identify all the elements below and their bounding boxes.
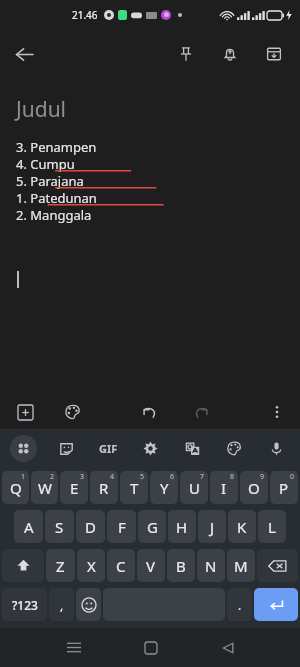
button[interactable]: Period xyxy=(227,588,252,621)
button[interactable]: Settings xyxy=(137,435,164,462)
button[interactable]: Theme xyxy=(221,435,248,462)
staticText: Y xyxy=(160,478,169,498)
staticText: 6 xyxy=(170,472,175,482)
button[interactable]: B xyxy=(167,549,195,582)
staticText: 2 xyxy=(50,472,55,482)
button[interactable]: Z xyxy=(46,549,75,582)
staticText: H xyxy=(176,517,188,537)
staticText: 1. Patedunan xyxy=(16,189,97,206)
staticText: F xyxy=(118,517,126,537)
staticText: A xyxy=(24,517,34,537)
button[interactable]: Judul xyxy=(0,78,300,395)
staticText: 5 xyxy=(140,472,145,482)
staticText: V xyxy=(146,556,156,576)
button[interactable]: E xyxy=(60,471,88,504)
button[interactable]: R xyxy=(90,471,118,504)
button[interactable]: A xyxy=(14,510,43,543)
staticText: 4 xyxy=(110,472,115,482)
staticText: K xyxy=(237,517,247,537)
button[interactable]: H xyxy=(168,510,196,543)
button[interactable]: U xyxy=(180,471,208,504)
staticText: T xyxy=(130,478,139,498)
button[interactable]: I xyxy=(210,471,238,504)
button[interactable]: D xyxy=(76,510,105,543)
button[interactable]: Stickers xyxy=(53,435,80,462)
staticText: U xyxy=(189,478,200,498)
staticText: 9 xyxy=(260,472,265,482)
staticText: 5. Parajana xyxy=(16,172,84,189)
button[interactable]: O xyxy=(240,471,268,504)
button[interactable]: Add xyxy=(8,395,42,429)
button[interactable]: W xyxy=(31,471,58,504)
staticText: 21.46 xyxy=(72,8,98,22)
staticText: 4. Cumpu xyxy=(16,155,75,172)
staticText: 3. Penampen xyxy=(16,138,97,155)
button[interactable]: Pin xyxy=(164,32,208,76)
button[interactable]: Background colour xyxy=(56,395,90,429)
staticText: 1 xyxy=(21,472,26,482)
button[interactable]: Reminder xyxy=(208,32,252,76)
button[interactable]: V xyxy=(137,549,165,582)
button[interactable]: Home xyxy=(131,628,170,667)
staticText: W xyxy=(38,478,52,498)
staticText: GIF xyxy=(99,441,118,456)
button[interactable]: Y xyxy=(150,471,178,504)
button[interactable]: J xyxy=(198,510,226,543)
button[interactable]: T xyxy=(120,471,148,504)
staticText: G xyxy=(147,517,158,537)
button[interactable]: More options xyxy=(260,395,294,429)
button[interactable]: Back xyxy=(208,628,247,667)
staticText: B xyxy=(176,556,186,576)
button[interactable]: F xyxy=(107,510,136,543)
button[interactable]: K xyxy=(228,510,256,543)
staticText: S xyxy=(55,517,64,537)
staticText: Q xyxy=(10,478,22,498)
staticText: C xyxy=(116,556,126,576)
button[interactable]: Enter xyxy=(254,588,298,621)
staticText: P xyxy=(279,478,289,498)
staticText: N xyxy=(205,556,217,576)
button[interactable]: GIF xyxy=(95,435,122,462)
staticText: O xyxy=(248,478,260,498)
button[interactable]: Shift xyxy=(2,549,44,582)
staticText: Z xyxy=(56,556,65,576)
button[interactable]: S xyxy=(45,510,74,543)
staticText: , xyxy=(60,597,64,613)
button[interactable]: X xyxy=(77,549,105,582)
staticText: L xyxy=(268,517,276,537)
staticText: E xyxy=(70,478,79,498)
button[interactable]: ?123 xyxy=(2,588,47,621)
button[interactable]: Apps xyxy=(10,435,37,462)
button[interactable]: N xyxy=(197,549,225,582)
button[interactable]: Archive xyxy=(252,32,296,76)
button[interactable]: Voice input xyxy=(263,435,290,462)
button[interactable]: Undo xyxy=(132,395,166,429)
staticText: Judul xyxy=(16,95,67,124)
button[interactable]: Comma xyxy=(49,588,74,621)
button[interactable]: M xyxy=(227,549,255,582)
button[interactable]: Redo xyxy=(184,395,218,429)
staticText: M xyxy=(234,556,248,576)
staticText: ?123 xyxy=(12,597,38,613)
button[interactable]: Back xyxy=(0,30,48,78)
button[interactable]: C xyxy=(107,549,135,582)
button[interactable]: Backspace xyxy=(257,549,298,582)
staticText: I xyxy=(221,478,227,498)
button[interactable]: P xyxy=(270,471,298,504)
staticText: 0 xyxy=(290,472,295,482)
button[interactable]: L xyxy=(258,510,286,543)
button[interactable]: Q xyxy=(2,471,29,504)
staticText: X xyxy=(87,556,96,576)
staticText: 8 xyxy=(230,472,235,482)
staticText: J xyxy=(210,517,215,537)
button[interactable]: G xyxy=(138,510,166,543)
button[interactable]: Translate xyxy=(179,435,206,462)
staticText: . xyxy=(238,597,242,613)
button[interactable]: Recents xyxy=(54,628,93,667)
staticText: 7 xyxy=(200,472,205,482)
button[interactable]: Emoji xyxy=(76,588,101,621)
staticText: 3 xyxy=(80,472,85,482)
staticText: R xyxy=(99,478,109,498)
staticText: 2. Manggala xyxy=(16,206,92,223)
